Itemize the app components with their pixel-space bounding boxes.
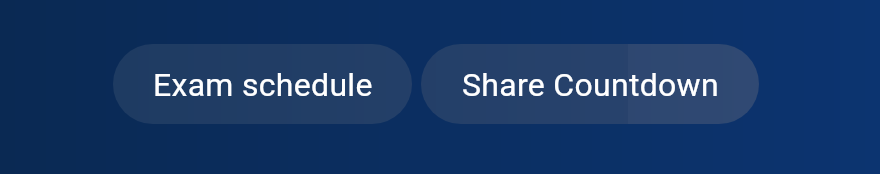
staticText: Share Countdown [462,66,719,104]
button[interactable]: Exam schedule [113,44,412,124]
button[interactable]: Share Countdown [421,44,759,124]
staticText: Exam schedule [153,66,373,104]
